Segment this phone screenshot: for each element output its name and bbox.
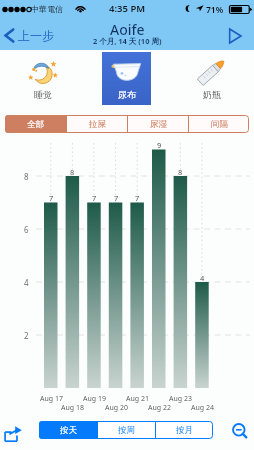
staticText: 尿布	[118, 89, 136, 100]
button[interactable]: Search	[230, 421, 250, 441]
staticText: Aug 22	[148, 403, 171, 413]
button[interactable]: 按月	[156, 421, 213, 439]
staticText: 4:35 PM	[109, 2, 146, 15]
button[interactable]: 奶瓶	[187, 52, 236, 105]
button[interactable]: Next	[216, 26, 254, 46]
staticText: Aoife	[110, 20, 145, 39]
button[interactable]: 拉屎	[67, 115, 127, 133]
staticText: 8	[70, 167, 75, 177]
staticText: Aug 17	[40, 394, 63, 404]
button[interactable]: 尿布	[102, 52, 151, 105]
staticText: 4	[200, 273, 205, 283]
button[interactable]: 上一步	[0, 26, 60, 45]
staticText: Aug 23	[169, 394, 192, 404]
button[interactable]: 睡觉	[18, 52, 67, 105]
staticText: 7	[92, 193, 97, 203]
staticText: 奶瓶	[203, 89, 221, 100]
button[interactable]: 尿湿	[128, 115, 188, 133]
button[interactable]: 按天	[39, 421, 97, 439]
staticText: 2	[24, 330, 29, 341]
button[interactable]: 按周	[98, 421, 155, 439]
staticText: 睡觉	[34, 89, 52, 100]
button[interactable]: 间隔	[189, 115, 249, 133]
staticText: 4	[24, 277, 29, 288]
staticText: Aug 24	[191, 403, 214, 413]
staticText: 尿湿	[150, 119, 167, 130]
staticText: 7	[49, 193, 54, 203]
staticText: 中華電信	[31, 4, 63, 14]
staticText: 上一步	[18, 28, 54, 43]
staticText: 8	[178, 167, 183, 177]
staticText: 2 个月, 14 天 (10 周)	[93, 36, 162, 46]
button[interactable]: 全部	[5, 115, 66, 133]
staticText: 7	[114, 193, 119, 203]
button[interactable]: Share	[1, 423, 25, 445]
staticText: 拉屎	[89, 119, 106, 130]
staticText: 7	[135, 193, 140, 203]
staticText: 按月	[176, 425, 193, 436]
staticText: Aug 20	[105, 403, 128, 413]
staticText: 6	[24, 224, 29, 235]
staticText: Aug 21	[126, 394, 149, 404]
staticText: Aug 19	[83, 394, 106, 404]
staticText: 9	[157, 140, 162, 150]
staticText: 全部	[27, 119, 44, 130]
staticText: Aug 18	[61, 403, 84, 413]
staticText: 71%	[206, 4, 224, 16]
staticText: 按天	[60, 425, 77, 436]
staticText: 间隔	[211, 119, 228, 130]
staticText: 8	[24, 171, 29, 182]
staticText: 按周	[118, 425, 135, 436]
